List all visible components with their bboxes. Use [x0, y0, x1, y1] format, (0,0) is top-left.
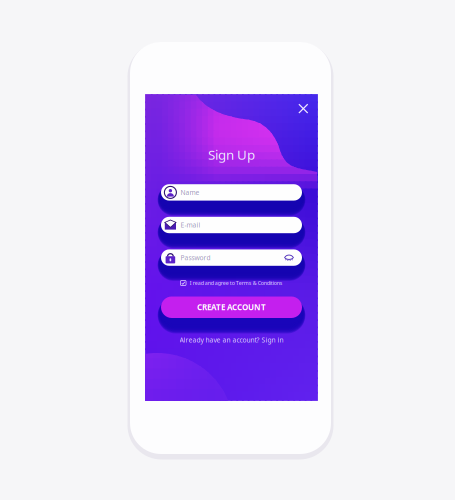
staticText: CREATE ACCOUNT	[197, 302, 266, 312]
staticText: I read and agree to Terms & Conditions	[190, 279, 283, 287]
button[interactable]: I read and agree to Terms & Conditions	[146, 278, 317, 287]
button[interactable]: Already have an account? Sign in	[146, 335, 317, 344]
staticText: E-mail	[180, 221, 200, 229]
staticText: Password	[180, 253, 210, 262]
button[interactable]: CREATE ACCOUNT	[161, 296, 302, 323]
button[interactable]: Name	[161, 184, 302, 207]
button[interactable]: E-mail	[161, 217, 302, 239]
staticText: Name	[180, 188, 199, 197]
staticText: Already have an account? Sign in	[179, 336, 283, 344]
button[interactable]: Close	[293, 99, 313, 119]
staticText: Sign Up	[208, 146, 255, 163]
button[interactable]: Password	[161, 249, 302, 272]
